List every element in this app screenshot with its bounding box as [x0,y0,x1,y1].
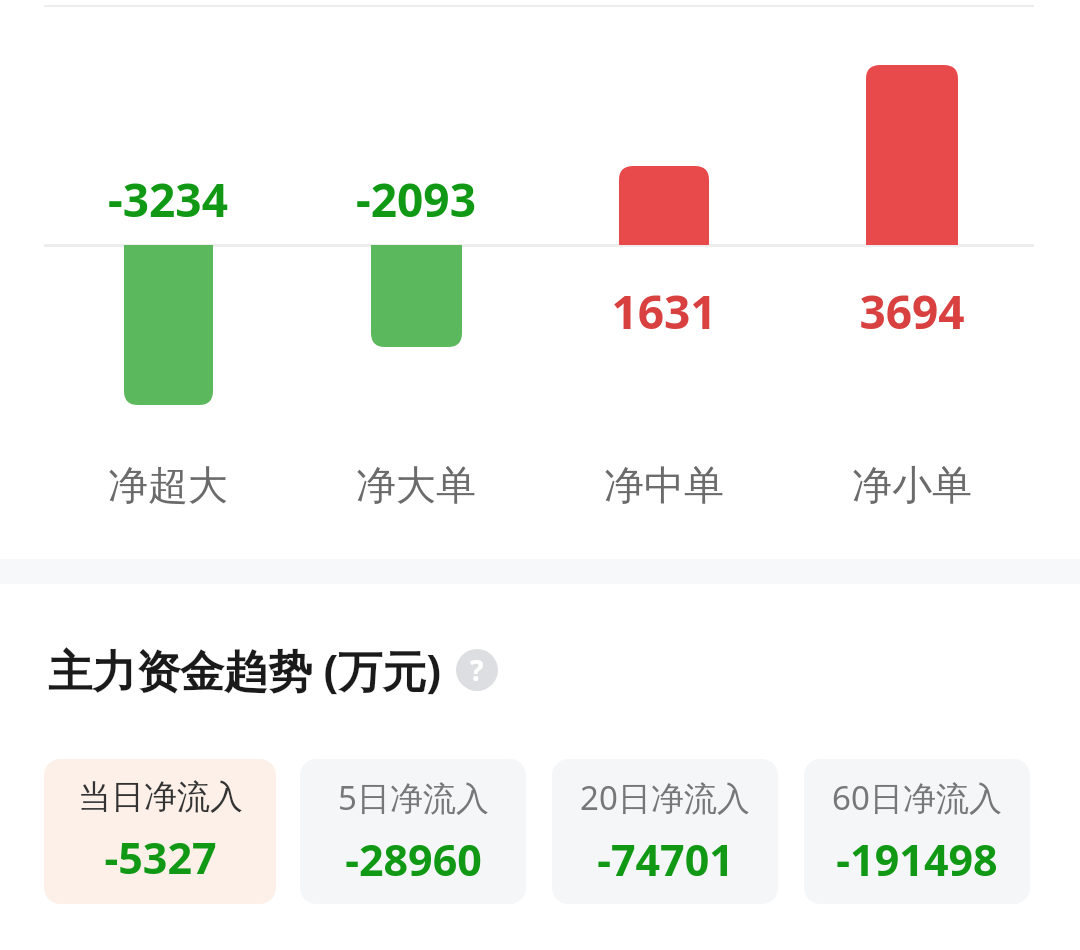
staticText: 净小单 [852,460,972,510]
staticText: -5327 [104,828,217,887]
staticText: 主力资金趋势 (万元) [48,640,442,700]
button[interactable]: 帮助说明 [456,649,498,691]
staticText: 净中单 [604,460,724,510]
staticText: 净超大 [108,460,228,510]
button[interactable]: 20日净流入 [552,759,778,904]
staticText: -3234 [108,168,228,231]
staticText: 当日净流入 [78,776,243,818]
staticText: 60日净流入 [832,775,1002,820]
staticText: 3694 [859,280,965,343]
staticText: 净大单 [356,460,476,510]
staticText: 5日净流入 [338,775,489,820]
staticText: -28960 [345,830,482,889]
button[interactable]: 5日净流入 [300,759,526,904]
staticText: -74701 [597,830,734,889]
button[interactable]: 60日净流入 [804,759,1030,904]
staticText: -191498 [836,830,998,889]
staticText: 1631 [611,280,717,343]
staticText: 20日净流入 [580,775,750,820]
button[interactable]: 当日净流入 [44,759,276,904]
staticText: -2093 [356,168,476,231]
staticText: ? [470,651,484,689]
